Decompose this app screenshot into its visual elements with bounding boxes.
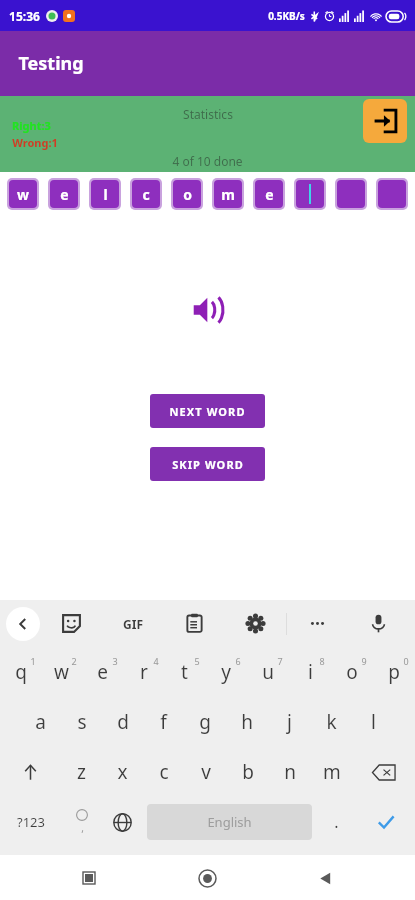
button[interactable]: NEXT WORD — [150, 394, 265, 428]
staticText: 8 — [319, 655, 325, 667]
staticText: 5 — [194, 655, 200, 667]
staticText: l — [371, 709, 376, 735]
staticText: e — [265, 185, 274, 204]
button[interactable]: Play sound — [186, 288, 230, 332]
button[interactable]: More — [287, 613, 348, 634]
staticText: i — [308, 659, 313, 685]
staticText: 3 — [112, 655, 118, 667]
button[interactable]: d — [102, 697, 143, 747]
button[interactable]: v — [185, 747, 227, 797]
staticText: c — [142, 185, 150, 204]
button[interactable]: m — [311, 747, 353, 797]
button[interactable]: m — [214, 180, 242, 208]
staticText: c — [159, 759, 169, 785]
button[interactable]: n — [269, 747, 311, 797]
button[interactable]: Change language — [102, 797, 143, 847]
button[interactable] — [337, 180, 365, 208]
staticText: x — [117, 759, 128, 785]
staticText: 6 — [235, 655, 241, 667]
staticText: v — [201, 759, 211, 785]
button[interactable]: i — [289, 647, 331, 697]
button[interactable]: Clipboard — [164, 613, 225, 634]
staticText: m — [221, 185, 235, 204]
button[interactable]: Shift — [0, 747, 61, 797]
button[interactable]: r — [123, 647, 164, 697]
staticText: y — [221, 659, 231, 685]
button[interactable]: g — [184, 697, 226, 747]
staticText: p — [388, 659, 400, 685]
button[interactable]: o — [173, 180, 201, 208]
staticText: e — [60, 185, 69, 204]
button[interactable]: Back — [6, 607, 40, 641]
button[interactable]: Emoji — [61, 797, 102, 847]
staticText: Testing — [18, 51, 84, 76]
staticText: h — [241, 709, 253, 735]
staticText: Statistics — [183, 106, 233, 122]
staticText: f — [160, 709, 167, 735]
button[interactable]: w — [41, 647, 82, 697]
button[interactable]: Back — [304, 857, 346, 899]
staticText: w — [54, 659, 69, 685]
button[interactable]: x — [102, 747, 143, 797]
button[interactable]: c — [132, 180, 160, 208]
button[interactable]: Backspace — [353, 747, 415, 797]
button[interactable]: English — [147, 804, 312, 840]
button[interactable]: b — [227, 747, 269, 797]
button[interactable]: p — [373, 647, 415, 697]
staticText: k — [326, 709, 337, 735]
button[interactable]: e — [255, 180, 283, 208]
button[interactable]: w — [9, 180, 37, 208]
button[interactable]: u — [247, 647, 289, 697]
button[interactable]: k — [310, 697, 352, 747]
staticText: GIF — [123, 616, 143, 632]
button[interactable]: t — [164, 647, 205, 697]
button[interactable]: GIF — [117, 610, 149, 638]
button[interactable]: . — [316, 797, 357, 847]
button[interactable]: Settings — [225, 613, 286, 634]
staticText: , — [81, 821, 84, 835]
button[interactable]: Home — [186, 857, 228, 899]
button[interactable]: Stickers — [40, 613, 102, 634]
button[interactable]: y — [205, 647, 247, 697]
button[interactable]: Enter — [357, 797, 415, 847]
button[interactable]: Voice input — [348, 613, 409, 634]
button[interactable]: c — [143, 747, 185, 797]
button[interactable]: e — [82, 647, 123, 697]
button[interactable]: o — [331, 647, 373, 697]
button[interactable]: Recents — [68, 857, 110, 899]
button[interactable]: h — [226, 697, 268, 747]
button[interactable]: l — [352, 697, 394, 747]
staticText: 4 — [153, 655, 159, 667]
button[interactable]: l — [91, 180, 119, 208]
staticText: u — [262, 659, 274, 685]
staticText: w — [17, 185, 29, 204]
button[interactable]: f — [143, 697, 184, 747]
staticText: n — [284, 759, 296, 785]
button[interactable]: z — [61, 747, 102, 797]
staticText: 0.5KB/s — [268, 9, 305, 23]
staticText: q — [15, 659, 27, 685]
button[interactable] — [378, 180, 406, 208]
staticText: 0 — [403, 655, 409, 667]
button[interactable]: Exit — [363, 99, 407, 143]
button[interactable]: a — [20, 697, 61, 747]
staticText: 2 — [71, 655, 77, 667]
button[interactable]: j — [268, 697, 310, 747]
button[interactable]: ?123 — [0, 797, 61, 847]
button[interactable]: q — [0, 647, 41, 697]
button[interactable]: SKIP WORD — [150, 447, 265, 481]
staticText: 15:36 — [9, 8, 40, 24]
staticText: Wrong:1 — [12, 135, 58, 150]
staticText: r — [140, 659, 148, 685]
staticText: t — [181, 659, 188, 685]
staticText: 4 of 10 done — [172, 153, 243, 169]
staticText: ?123 — [17, 813, 45, 831]
staticText: 1 — [30, 655, 36, 667]
staticText: o — [183, 185, 192, 204]
button[interactable] — [296, 180, 324, 208]
staticText: s — [77, 709, 87, 735]
staticText: a — [35, 709, 46, 735]
button[interactable]: e — [50, 180, 78, 208]
staticText: j — [287, 709, 292, 735]
button[interactable]: s — [61, 697, 102, 747]
